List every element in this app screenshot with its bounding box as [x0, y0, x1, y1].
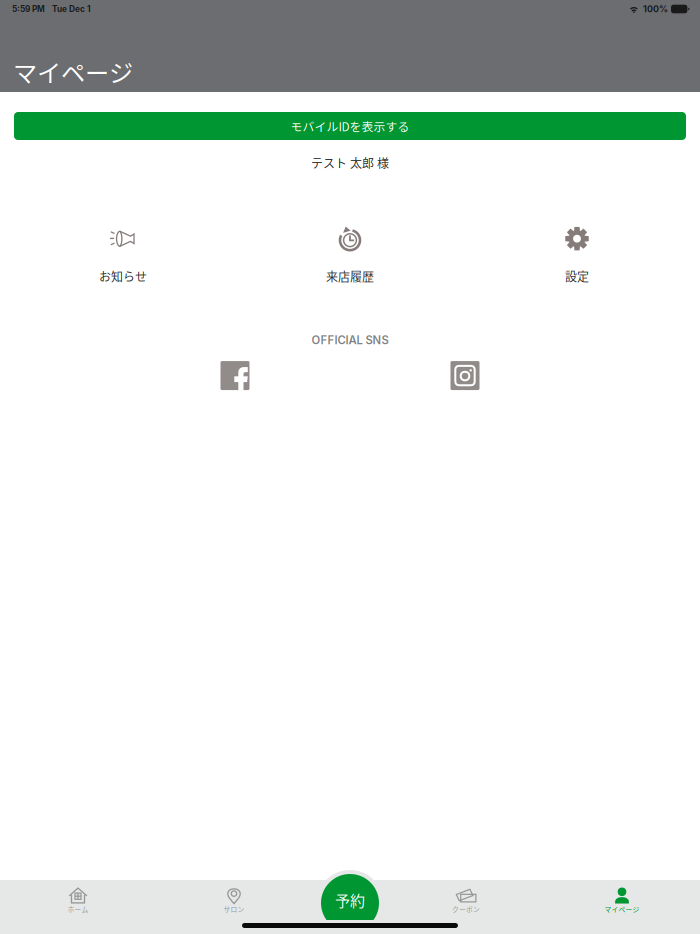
button[interactable]: マイページ — [544, 880, 700, 934]
staticText: 設定 — [565, 268, 589, 285]
button[interactable]: Instagram — [450, 361, 479, 390]
button[interactable]: クーポン — [388, 880, 544, 934]
staticText: 予約 — [335, 889, 365, 911]
staticText: OFFICIAL SNS — [311, 333, 388, 347]
staticText: テスト 太郎 様 — [311, 154, 389, 171]
button[interactable]: Facebook — [220, 361, 249, 390]
staticText: サロン — [223, 904, 244, 914]
staticText: モバイルIDを表示する — [290, 117, 409, 135]
button[interactable]: 設定 — [522, 226, 632, 285]
staticText: お知らせ — [99, 268, 147, 285]
staticText: クーポン — [452, 904, 480, 914]
staticText: 来店履歴 — [326, 268, 374, 285]
button[interactable]: 来店履歴 — [295, 226, 405, 285]
button[interactable]: サロン — [156, 880, 312, 934]
staticText: ホーム — [67, 904, 88, 914]
staticText: マイページ — [604, 904, 639, 914]
staticText: 100% — [643, 4, 668, 14]
staticText: 5:59 PM — [12, 4, 45, 14]
staticText: Tue Dec 1 — [52, 4, 91, 14]
button[interactable]: モバイルIDを表示する — [14, 112, 686, 140]
button[interactable]: 予約 — [321, 874, 379, 920]
staticText: マイページ — [13, 54, 133, 89]
button[interactable]: ホーム — [0, 880, 156, 934]
button[interactable]: お知らせ — [68, 226, 178, 285]
